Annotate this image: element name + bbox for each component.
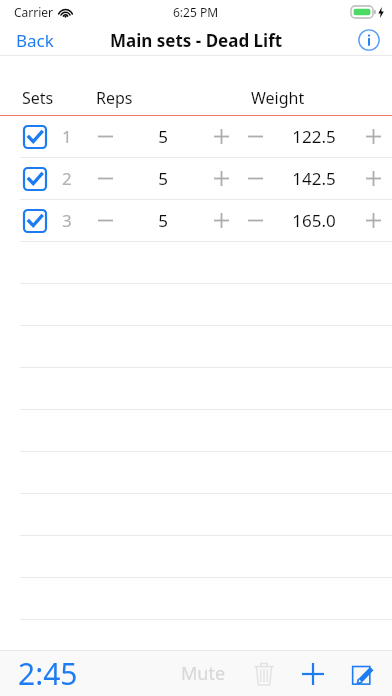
- button[interactable]: Set 1 done: [24, 126, 46, 148]
- button[interactable]: Back: [0, 25, 70, 56]
- button[interactable]: Increase: [356, 200, 390, 241]
- button[interactable]: Decrease: [88, 116, 122, 157]
- button[interactable]: Info: [346, 26, 392, 54]
- button[interactable]: Decrease: [238, 158, 272, 199]
- button[interactable]: Decrease: [238, 116, 272, 157]
- button[interactable]: Edit: [338, 657, 382, 691]
- button[interactable]: Increase: [356, 158, 390, 199]
- button[interactable]: Delete: [240, 656, 288, 691]
- button[interactable]: Decrease: [88, 200, 122, 241]
- staticText: Back: [16, 29, 54, 52]
- staticText: 6:25 PM: [173, 4, 219, 20]
- button[interactable]: Increase: [356, 116, 390, 157]
- button[interactable]: Set 2 done: [0, 158, 392, 199]
- button[interactable]: 2:45: [0, 653, 88, 694]
- staticText: Sets: [22, 87, 54, 109]
- button[interactable]: Decrease: [88, 158, 122, 199]
- staticText: 122.5: [292, 125, 336, 148]
- staticText: Mute: [181, 661, 226, 686]
- staticText: 5: [158, 209, 168, 232]
- staticText: Weight: [251, 87, 305, 109]
- button[interactable]: Add: [288, 657, 338, 691]
- button[interactable]: Set 3 done: [24, 210, 46, 232]
- button[interactable]: Increase: [204, 116, 238, 157]
- staticText: 5: [158, 167, 168, 190]
- staticText: Main sets - Dead Lift: [110, 29, 283, 52]
- button[interactable]: Increase: [204, 200, 238, 241]
- staticText: 142.5: [292, 167, 336, 190]
- staticText: 2:45: [18, 653, 78, 694]
- staticText: Carrier: [14, 4, 54, 20]
- staticText: 3: [62, 209, 72, 232]
- staticText: 2: [62, 167, 72, 190]
- button[interactable]: Mute: [167, 653, 240, 694]
- button[interactable]: Set 3 done: [0, 200, 392, 241]
- staticText: 5: [158, 125, 168, 148]
- button[interactable]: Set 1 done: [0, 116, 392, 157]
- staticText: 1: [62, 125, 72, 148]
- staticText: 165.0: [292, 209, 336, 232]
- button[interactable]: Increase: [204, 158, 238, 199]
- button[interactable]: Set 2 done: [24, 168, 46, 190]
- staticText: Reps: [96, 87, 133, 109]
- button[interactable]: Decrease: [238, 200, 272, 241]
